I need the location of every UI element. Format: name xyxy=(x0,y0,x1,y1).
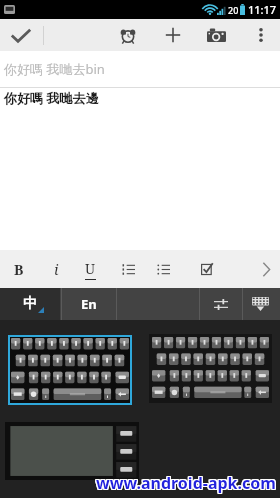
staticText: 中 xyxy=(23,295,37,313)
staticText: www.android-apk.com xyxy=(97,471,277,493)
staticText: www.android-apk.com xyxy=(97,472,277,494)
button[interactable]: En xyxy=(62,288,116,320)
staticText: U xyxy=(85,259,96,278)
button[interactable]: Bold xyxy=(2,250,36,288)
staticText: www.android-apk.com xyxy=(96,472,276,494)
button[interactable]: Add xyxy=(159,21,187,49)
button[interactable]: Underline xyxy=(73,250,107,288)
button[interactable]: Handwriting input xyxy=(5,422,139,480)
staticText: 20 xyxy=(228,4,239,16)
button[interactable]: More formatting xyxy=(249,250,280,288)
button[interactable]: More options xyxy=(247,21,275,49)
button[interactable]: Chinese keyboard xyxy=(149,334,272,403)
staticText: www.android-apk.com xyxy=(95,473,275,495)
button[interactable]: 中 xyxy=(0,288,60,320)
staticText: 你好嗎 我哋去bin xyxy=(4,60,105,78)
button[interactable]: Bullet list xyxy=(146,250,180,288)
staticText: www.android-apk.com xyxy=(96,473,276,495)
staticText: www.android-apk.com xyxy=(96,471,276,493)
button[interactable]: QWERTY keyboard xyxy=(8,335,132,405)
button[interactable]: 你好嗎 我哋去bin xyxy=(0,51,280,250)
staticText: www.android-apk.com xyxy=(96,472,276,494)
button[interactable]: Input settings xyxy=(205,288,237,320)
button[interactable]: Checklist xyxy=(190,250,224,288)
staticText: En xyxy=(81,295,97,313)
button[interactable]: Done xyxy=(8,22,34,48)
staticText: i xyxy=(54,259,59,279)
staticText: www.android-apk.com xyxy=(95,472,275,494)
staticText: www.android-apk.com xyxy=(97,473,277,495)
staticText: www.android-apk.com xyxy=(95,471,275,493)
button[interactable]: Camera xyxy=(202,21,230,49)
staticText: 你好嗎 我哋去邊 xyxy=(4,89,99,107)
staticText: B xyxy=(14,260,24,279)
button[interactable]: Alarm xyxy=(114,21,142,49)
button[interactable]: Numbered list xyxy=(111,250,145,288)
button[interactable]: Hide keyboard xyxy=(244,288,276,320)
staticText: 11:17 xyxy=(248,2,277,17)
button[interactable]: Italic xyxy=(39,250,73,288)
